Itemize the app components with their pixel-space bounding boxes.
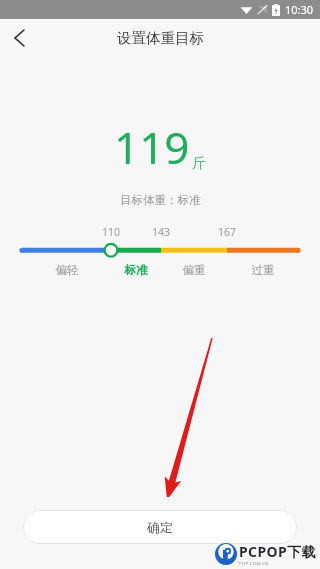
staticText: 143: [143, 225, 179, 239]
button[interactable]: 过重: [241, 263, 285, 277]
staticText: 119: [114, 117, 190, 177]
staticText: PCPOP下载: [239, 542, 316, 561]
staticText: 偏轻: [45, 263, 89, 277]
staticText: 110: [93, 225, 129, 239]
staticText: 10:30: [285, 2, 314, 17]
button[interactable]: 偏重: [172, 263, 216, 277]
staticText: 偏重: [172, 263, 216, 277]
staticText: 目标体重：标准: [120, 193, 201, 207]
staticText: 167: [209, 225, 245, 239]
button[interactable]: 确定: [23, 510, 297, 544]
staticText: 标准: [114, 263, 158, 277]
staticText: 斤: [192, 155, 206, 173]
button[interactable]: 偏轻: [45, 263, 89, 277]
button[interactable]: 标准: [114, 263, 158, 277]
staticText: 过重: [241, 263, 285, 277]
staticText: 确定: [147, 519, 173, 535]
button[interactable]: Back: [0, 19, 42, 57]
staticText: 设置体重目标: [117, 29, 204, 47]
button[interactable]: Weight goal slider: [0, 241, 320, 263]
staticText: POP.COM.CN: [239, 561, 269, 566]
